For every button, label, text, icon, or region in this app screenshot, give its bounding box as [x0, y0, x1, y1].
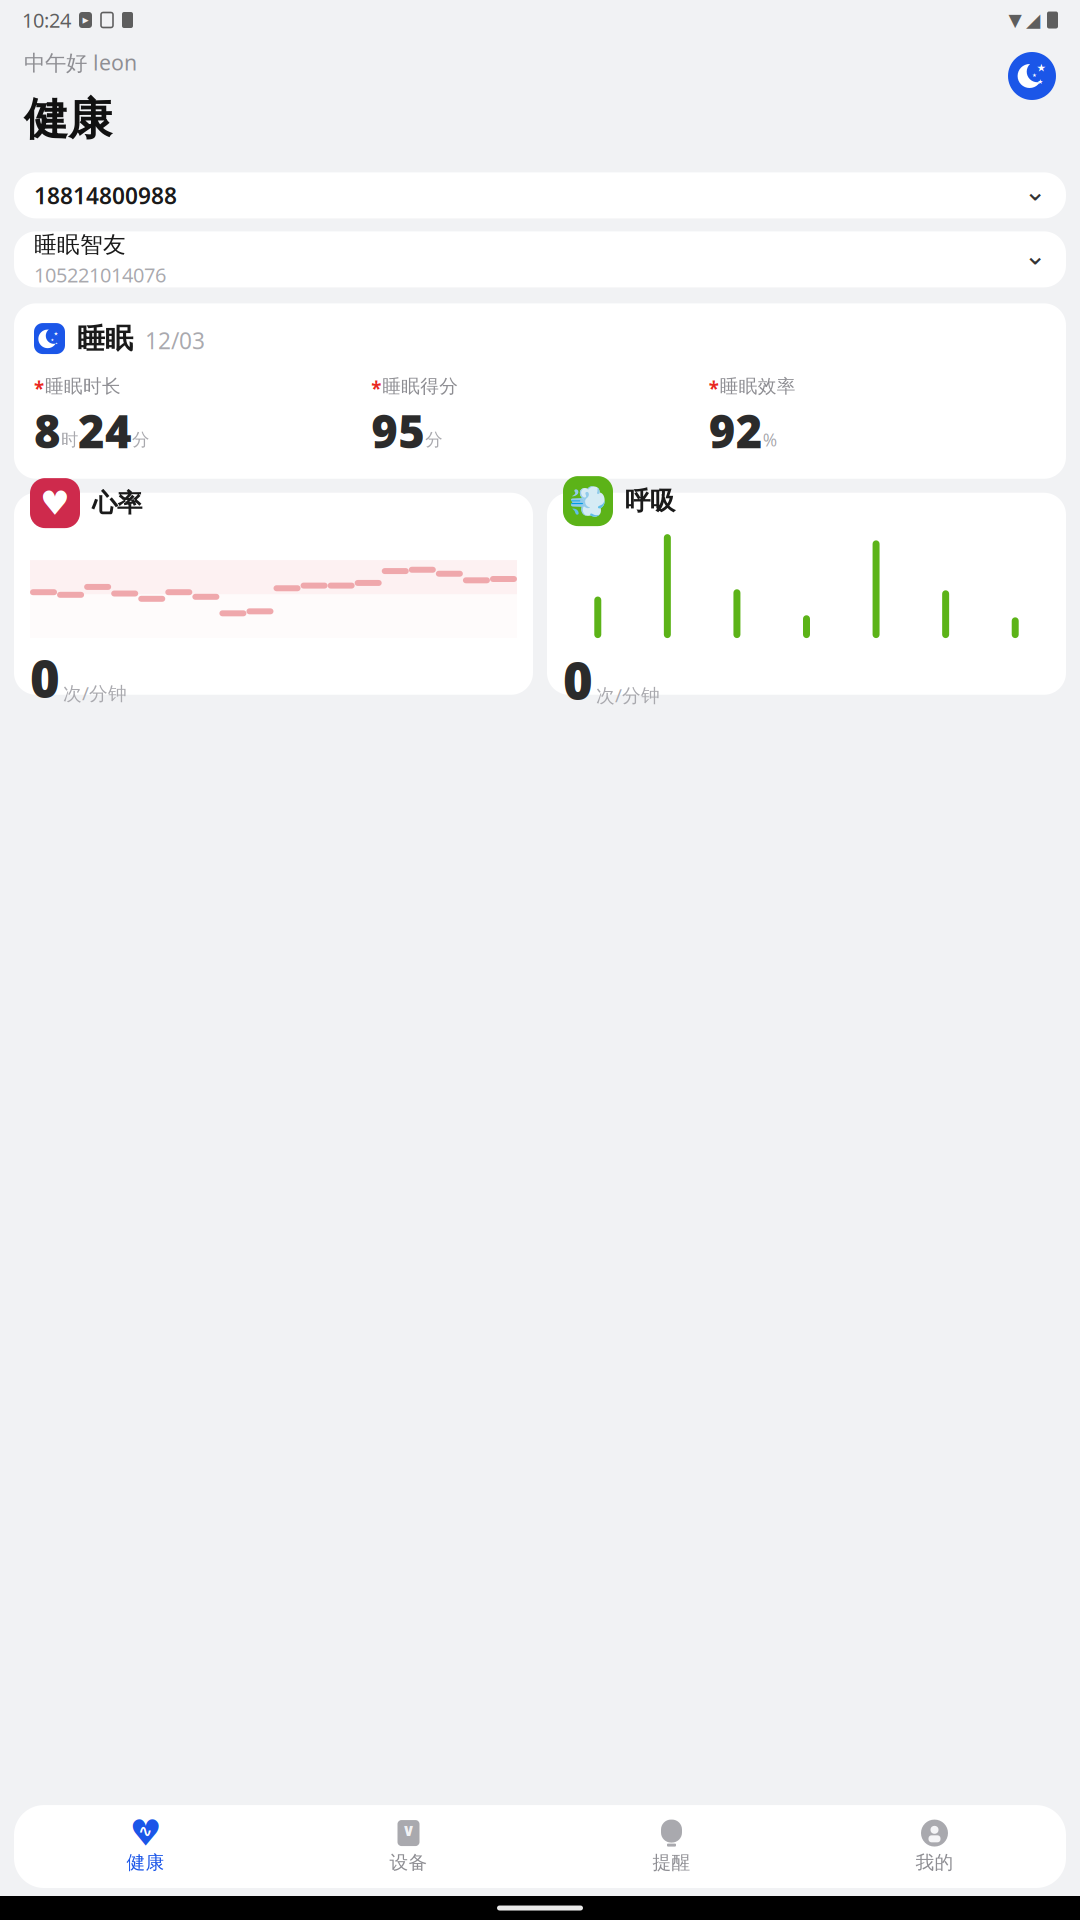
staticText: 设备: [389, 1851, 427, 1874]
staticText: 时: [61, 429, 78, 450]
staticText: 💨: [569, 484, 607, 519]
staticText: 92: [709, 401, 763, 461]
staticText: *: [709, 376, 719, 401]
staticText: ▼: [1008, 10, 1021, 30]
staticText: *: [371, 376, 381, 401]
staticText: 中午好 leon: [24, 48, 137, 76]
button[interactable]: ∨: [277, 1811, 540, 1882]
staticText: 10:24: [22, 7, 71, 33]
staticText: 提醒: [652, 1851, 690, 1874]
staticText: ★: [1032, 72, 1037, 78]
staticText: *: [34, 376, 44, 401]
staticText: ♥: [129, 1813, 161, 1853]
button[interactable]: ★: [14, 303, 1066, 479]
staticText: 睡眠: [77, 321, 133, 356]
staticText: ∿: [138, 1821, 153, 1841]
button[interactable]: ♥: [14, 1811, 277, 1882]
staticText: 睡眠得分: [382, 375, 458, 398]
staticText: ∨: [401, 1820, 415, 1840]
staticText: 18814800988: [34, 180, 177, 210]
button[interactable]: 💨: [547, 493, 1066, 695]
staticText: 健康: [126, 1851, 164, 1874]
staticText: 24: [78, 401, 132, 461]
staticText: 次/分钟: [596, 683, 660, 707]
staticText: 0: [563, 646, 593, 713]
staticText: 睡眠时长: [45, 375, 121, 398]
button[interactable]: 睡眠智友: [14, 231, 1066, 287]
staticText: ★: [53, 331, 58, 337]
button[interactable]: 提醒: [540, 1811, 803, 1882]
staticText: 次/分钟: [63, 681, 127, 705]
staticText: ★: [1037, 78, 1043, 86]
staticText: 睡眠智友: [34, 231, 126, 258]
staticText: 95: [371, 401, 425, 461]
button[interactable]: 睡眠模式: [1008, 52, 1056, 100]
staticText: 分: [132, 429, 149, 450]
button[interactable]: 18814800988: [14, 172, 1066, 218]
staticText: 健康: [24, 92, 112, 146]
staticText: ★: [1037, 62, 1047, 74]
staticText: 睡眠效率: [720, 375, 796, 398]
staticText: 12/03: [145, 325, 205, 356]
staticText: %: [763, 428, 777, 451]
staticText: ⌄: [1024, 240, 1046, 270]
staticText: 我的: [915, 1851, 953, 1874]
staticText: ▶: [82, 15, 88, 25]
staticText: ⌄: [1024, 176, 1046, 206]
button[interactable]: 我的: [803, 1811, 1066, 1882]
staticText: 呼吸: [625, 486, 675, 517]
staticText: ♥: [40, 484, 70, 522]
staticText: 心率: [92, 488, 142, 519]
staticText: 8: [34, 401, 61, 461]
staticText: 0: [30, 644, 60, 711]
staticText: ◢: [1026, 9, 1040, 31]
staticText: ★: [51, 337, 55, 342]
staticText: 105221014076: [34, 261, 166, 288]
staticText: 分: [425, 429, 442, 450]
button[interactable]: ♥: [14, 493, 533, 695]
staticText: ★: [55, 342, 57, 345]
